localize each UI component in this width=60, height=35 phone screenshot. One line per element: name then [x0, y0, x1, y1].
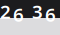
staticText: 6 — [45, 2, 56, 27]
staticText: 2 — [0, 0, 11, 24]
staticText: 3 — [32, 0, 43, 24]
staticText: 6 — [13, 2, 24, 27]
